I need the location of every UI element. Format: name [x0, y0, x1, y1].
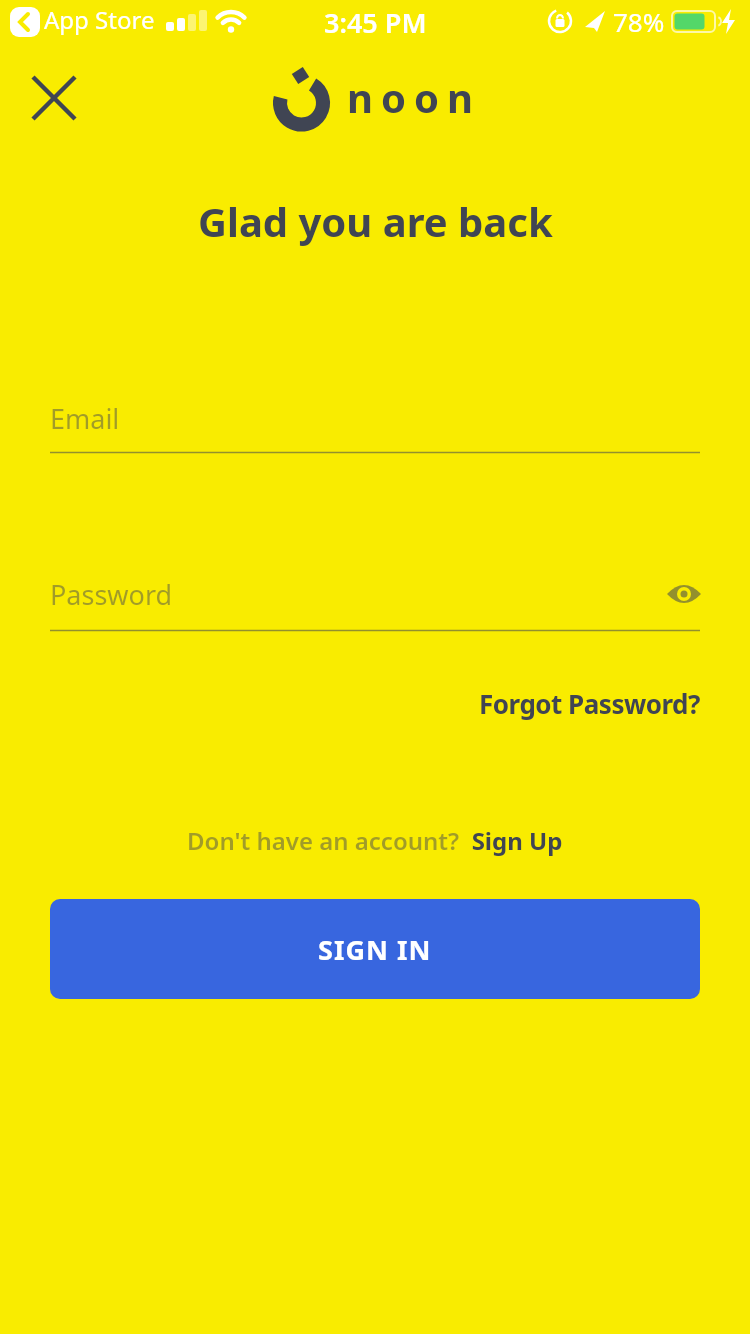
staticText: 78%	[613, 4, 665, 39]
button[interactable]: Email	[50, 390, 750, 446]
button[interactable]: Forgot Password?	[479, 686, 700, 721]
staticText: 3:45 PM	[324, 4, 427, 41]
button[interactable]: Don't have an account? Sign Up	[187, 824, 563, 857]
staticText: App Store	[44, 3, 155, 36]
staticText: noon	[347, 70, 481, 124]
button[interactable]	[20, 64, 88, 132]
staticText: SIGN IN	[318, 931, 432, 968]
button[interactable]: Password	[50, 566, 750, 622]
staticText: Glad you are back	[198, 194, 553, 248]
staticText: Email	[50, 400, 120, 437]
staticText: Password	[50, 576, 173, 613]
button[interactable]: SIGN IN	[50, 899, 700, 999]
